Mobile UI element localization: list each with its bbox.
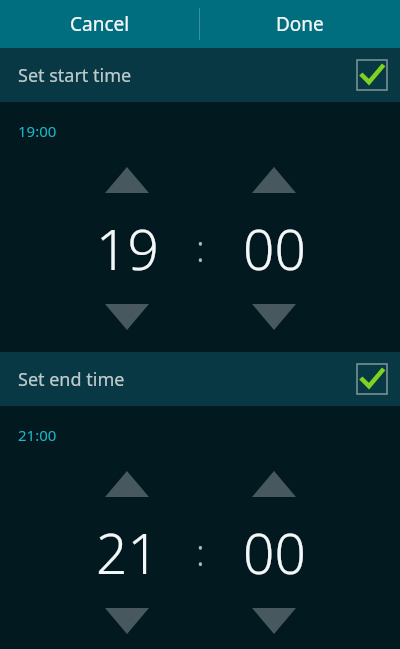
staticText: Set start time [18, 63, 132, 88]
staticText: 19 [96, 211, 159, 286]
button[interactable]: Toggle Set start time [357, 60, 387, 90]
button[interactable]: Increase hour [90, 167, 164, 193]
staticText: Set end time [18, 367, 125, 392]
staticText: 21:00 [18, 425, 57, 445]
button[interactable]: Set end time [0, 352, 400, 406]
staticText: 21 [96, 515, 159, 590]
button[interactable]: Decrease minute [237, 304, 311, 330]
button[interactable]: Decrease hour [90, 304, 164, 330]
staticText: : [196, 224, 205, 273]
staticText: 19:00 [18, 121, 57, 141]
staticText: 00 [243, 515, 306, 590]
button[interactable]: Done [200, 0, 400, 48]
staticText: : [196, 528, 205, 577]
button[interactable]: Decrease hour [90, 608, 164, 634]
button[interactable]: Increase hour [90, 471, 164, 497]
button[interactable]: Set start time [0, 48, 400, 102]
staticText: 00 [243, 211, 306, 286]
button[interactable]: Cancel [0, 0, 199, 48]
button[interactable]: Decrease minute [237, 608, 311, 634]
button[interactable]: Toggle Set end time [357, 364, 387, 394]
staticText: Cancel [70, 11, 130, 37]
button[interactable]: Increase minute [237, 471, 311, 497]
button[interactable]: Increase minute [237, 167, 311, 193]
staticText: Done [276, 11, 324, 37]
